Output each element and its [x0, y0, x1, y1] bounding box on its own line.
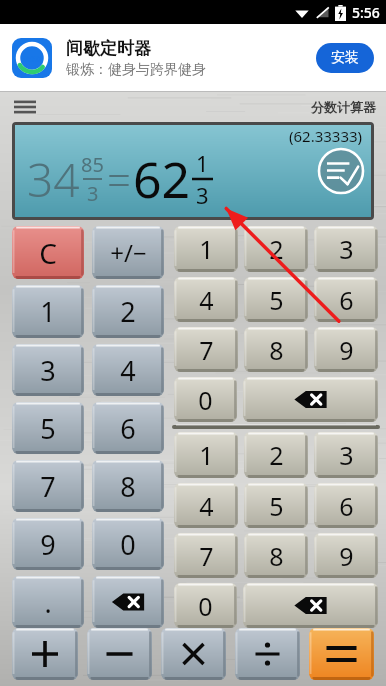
button[interactable]: 3 [314, 226, 378, 272]
button[interactable]: 8 [92, 460, 164, 512]
staticText: 安装 [331, 49, 359, 67]
button[interactable]: 1 [12, 285, 84, 338]
button[interactable]: 7 [174, 327, 238, 372]
staticText: 3 [87, 180, 99, 207]
staticText: 2 [269, 232, 284, 266]
staticText: 9 [339, 333, 354, 367]
staticText: 0 [198, 589, 213, 623]
staticText: 4 [120, 352, 136, 389]
staticText: 9 [40, 526, 56, 563]
button[interactable]: (62.33333) [15, 125, 371, 217]
staticText: 4 [199, 283, 214, 317]
button[interactable]: 2 [244, 432, 308, 478]
staticText: 85 [81, 151, 104, 178]
button[interactable]: Backspace [243, 583, 378, 628]
button[interactable]: 4 [92, 344, 164, 396]
staticText: 分数计算器 [311, 99, 376, 115]
staticText: 7 [40, 468, 56, 505]
staticText: 8 [269, 539, 284, 573]
button[interactable]: 5 [12, 402, 84, 454]
button[interactable]: 9 [314, 533, 378, 578]
staticText: 0 [120, 526, 136, 563]
staticText: 0 [198, 383, 213, 417]
button[interactable]: 0 [174, 583, 237, 628]
staticText: 62 [133, 145, 191, 213]
button[interactable]: Minus [87, 628, 152, 680]
staticText: 间歇定时器 [66, 38, 151, 59]
button[interactable]: 6 [314, 277, 378, 322]
staticText: 5 [40, 410, 56, 447]
button[interactable]: Divide [235, 628, 300, 680]
button[interactable]: 4 [174, 277, 238, 322]
button[interactable]: 0:30 [0, 24, 386, 92]
button[interactable]: 7 [12, 460, 84, 512]
staticText: 1 [199, 438, 214, 472]
button[interactable]: Menu [10, 92, 40, 122]
staticText: 1 [40, 293, 56, 330]
button[interactable]: Plus [12, 628, 78, 680]
button[interactable]: 5 [244, 277, 308, 322]
staticText: 5:56 [352, 3, 380, 22]
button[interactable]: Backspace [243, 377, 378, 422]
button[interactable]: 6 [314, 483, 378, 528]
staticText: 7 [199, 333, 214, 367]
button[interactable]: 1 [174, 432, 238, 478]
button[interactable]: 1 [174, 226, 238, 272]
button[interactable]: 0 [174, 377, 237, 422]
button[interactable]: 6 [92, 402, 164, 454]
staticText: 1 [196, 148, 209, 178]
button[interactable]: Multiply [161, 628, 226, 680]
button[interactable]: Backspace [92, 576, 164, 628]
button[interactable]: 2 [244, 226, 308, 272]
staticText: 2 [120, 293, 136, 330]
button[interactable]: 安装 [316, 43, 374, 73]
staticText: 3 [339, 438, 354, 472]
staticText: 1 [199, 232, 214, 266]
button[interactable]: 3 [12, 344, 84, 396]
staticText: 9 [339, 539, 354, 573]
staticText: 3 [339, 232, 354, 266]
button[interactable]: 4 [174, 483, 238, 528]
staticText: 34 [27, 148, 80, 211]
staticText: 3 [196, 180, 209, 210]
staticText: = [107, 151, 131, 208]
button[interactable]: 7 [174, 533, 238, 578]
staticText: 锻炼：健身与跨界健身 [66, 61, 206, 79]
button[interactable]: 5 [244, 483, 308, 528]
button[interactable]: 3 [314, 432, 378, 478]
button[interactable]: Result options [317, 147, 365, 195]
staticText: 6 [120, 410, 136, 447]
button[interactable]: 9 [314, 327, 378, 372]
staticText: 4 [199, 489, 214, 523]
staticText: 8 [120, 468, 136, 505]
button[interactable]: . [12, 576, 84, 628]
staticText: +/− [110, 236, 147, 269]
staticText: 3 [40, 352, 56, 389]
staticText: C [39, 234, 57, 272]
staticText: 8 [269, 333, 284, 367]
button[interactable]: 9 [12, 518, 84, 570]
staticText: 5 [269, 489, 284, 523]
button[interactable]: +/− [92, 226, 164, 279]
button[interactable]: C [12, 226, 84, 279]
button[interactable]: Equals [309, 628, 374, 680]
button[interactable]: 0 [92, 518, 164, 570]
staticText: (62.33333) [289, 126, 363, 146]
staticText: 6 [339, 283, 354, 317]
staticText: 5 [269, 283, 284, 317]
staticText: 6 [339, 489, 354, 523]
staticText: 7 [199, 539, 214, 573]
button[interactable]: 8 [244, 533, 308, 578]
button[interactable]: 8 [244, 327, 308, 372]
staticText: 2 [269, 438, 284, 472]
button[interactable]: 2 [92, 285, 164, 338]
staticText: . [44, 584, 52, 621]
